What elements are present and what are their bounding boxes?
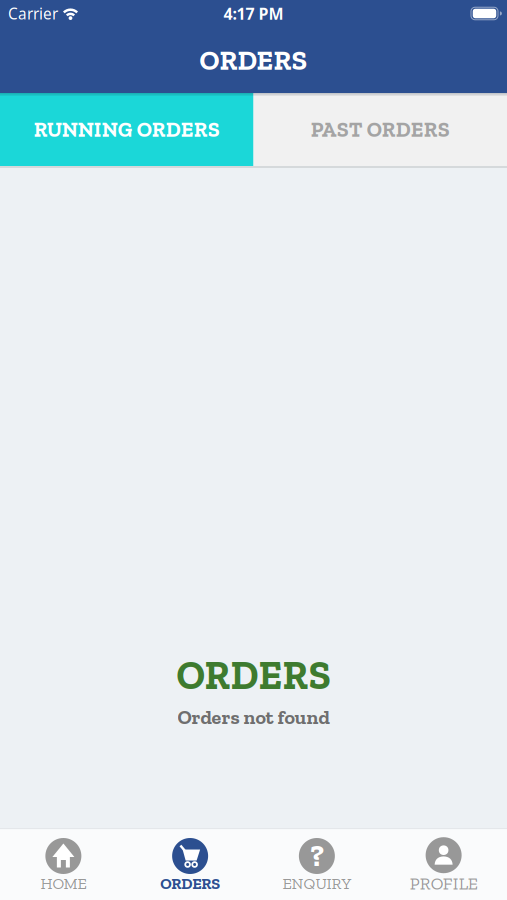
staticText: ORDERS [176,651,330,699]
button[interactable]: ORDERS [127,838,254,893]
staticText: ENQUIRY [282,874,351,893]
staticText: ? [310,838,324,874]
staticText: RUNNING ORDERS [34,117,220,142]
staticText: HOME [40,874,86,893]
staticText: ORDERS [160,874,220,893]
staticText: ORDERS [199,43,307,77]
staticText: 4:17 PM [223,3,283,24]
button[interactable]: HOME [0,838,127,893]
staticText: PROFILE [410,873,478,894]
button[interactable]: RUNNING ORDERS [0,93,253,166]
button[interactable]: PAST ORDERS [253,93,507,166]
staticText: Carrier [8,3,58,24]
button[interactable]: PROFILE [380,837,507,894]
button[interactable]: ? [253,838,380,893]
staticText: PAST ORDERS [311,117,450,142]
staticText: Orders not found [177,705,329,729]
